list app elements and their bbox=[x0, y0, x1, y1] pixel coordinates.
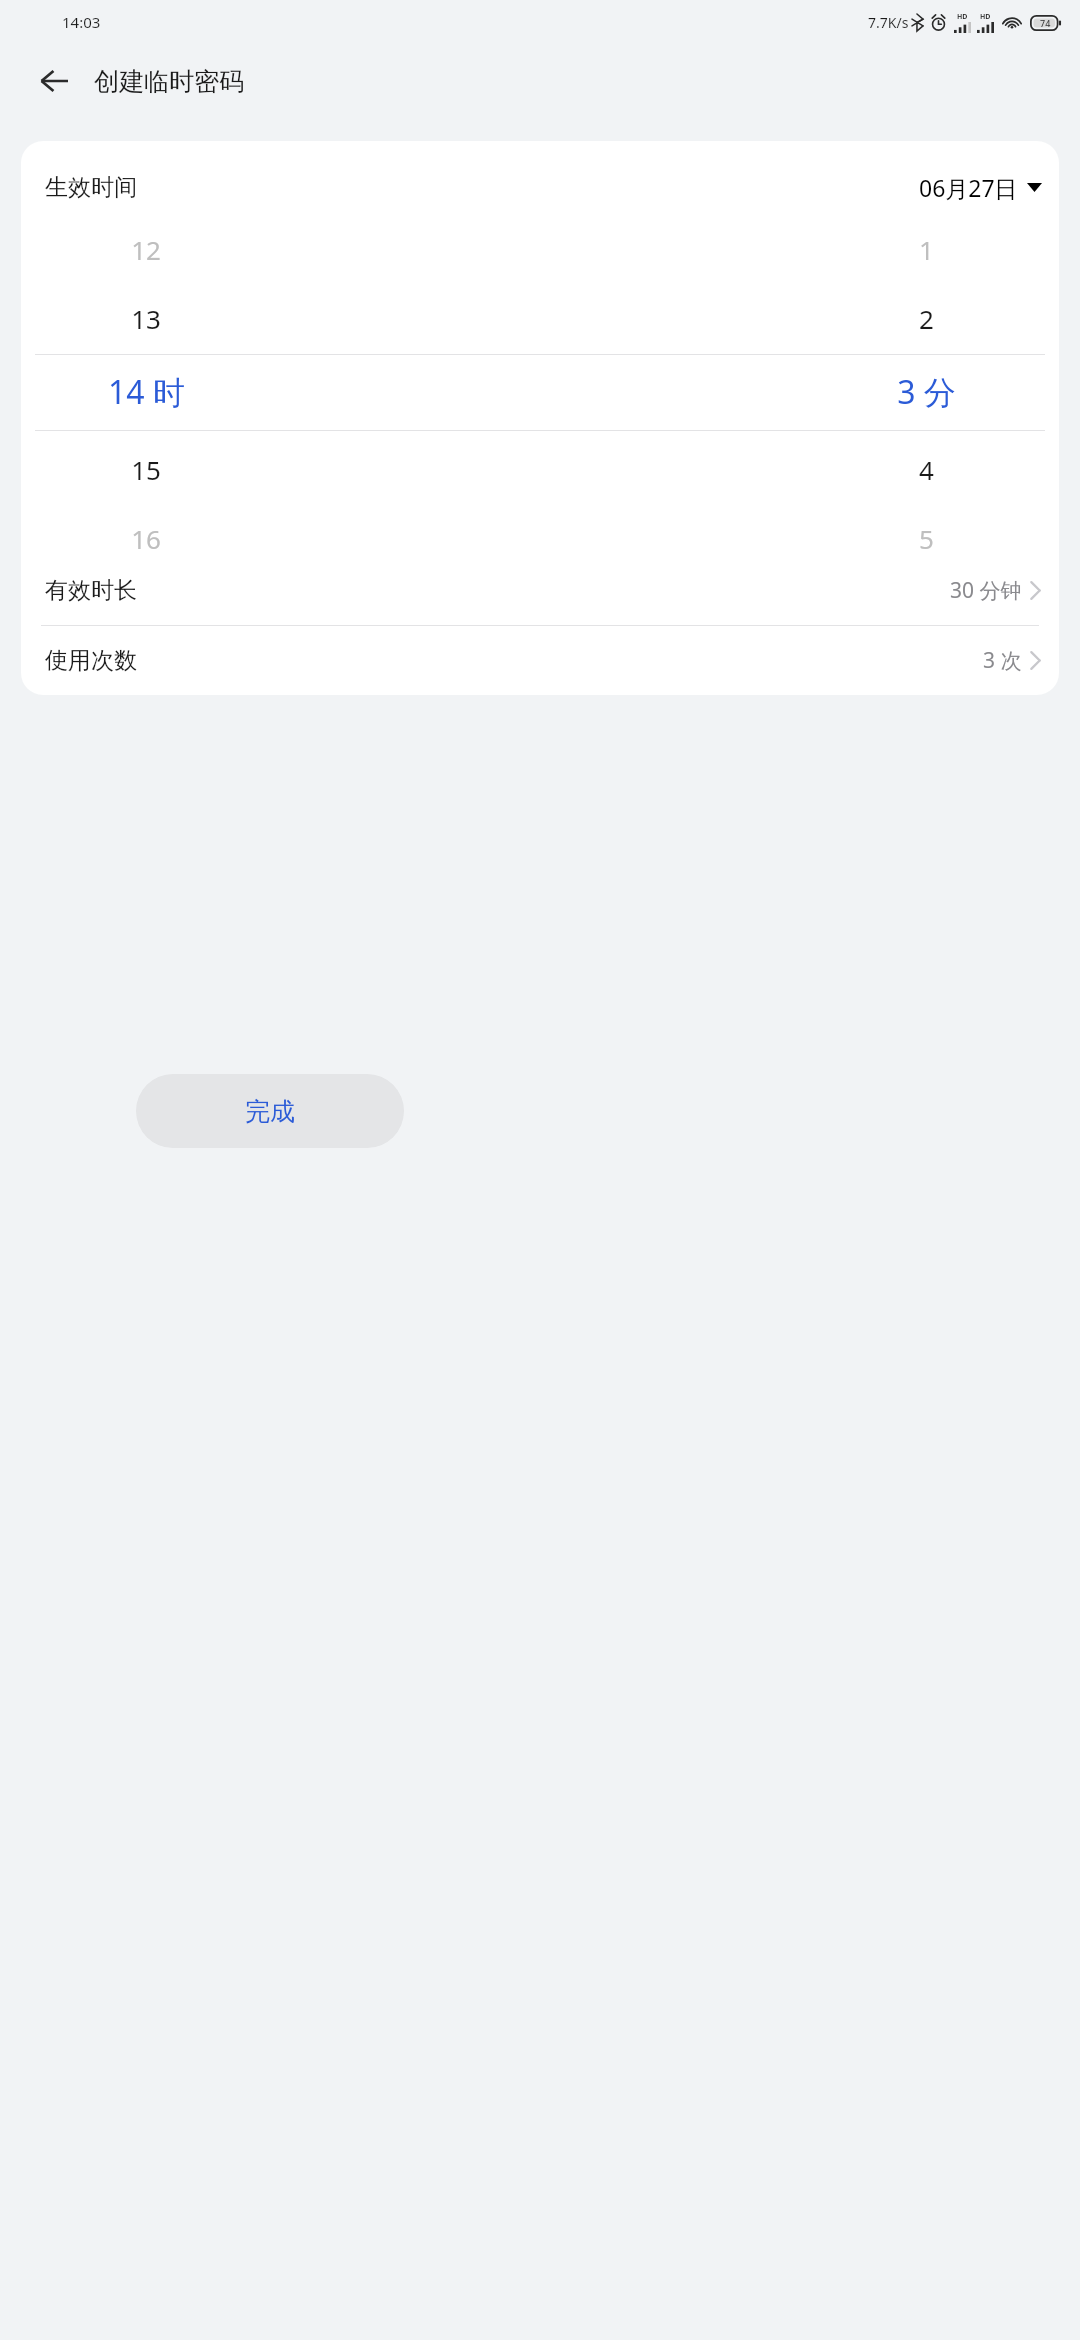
staticText: 16 bbox=[131, 521, 161, 556]
button[interactable]: 12 bbox=[21, 230, 271, 268]
button[interactable]: 3 分 bbox=[801, 368, 1051, 416]
staticText: 15 bbox=[131, 452, 161, 487]
button[interactable]: 2 bbox=[801, 299, 1051, 337]
button[interactable]: 16 bbox=[21, 519, 271, 557]
button[interactable]: 有效时长 bbox=[21, 555, 1059, 625]
staticText: 14:03 bbox=[62, 12, 101, 32]
button[interactable]: 4 bbox=[801, 450, 1051, 488]
staticText: HD bbox=[957, 12, 968, 22]
button[interactable]: 5 bbox=[801, 519, 1051, 557]
button[interactable]: 14 时 bbox=[21, 368, 271, 416]
staticText: 有效时长 bbox=[45, 576, 137, 605]
staticText: 13 bbox=[131, 301, 161, 336]
button[interactable]: 13 bbox=[21, 299, 271, 337]
button[interactable]: 15 bbox=[21, 450, 271, 488]
staticText: 1 bbox=[919, 232, 934, 267]
staticText: 创建临时密码 bbox=[94, 66, 244, 97]
staticText: 3 分 bbox=[897, 370, 956, 414]
button[interactable]: 使用次数 bbox=[21, 626, 1059, 695]
button[interactable]: 生效时间 bbox=[21, 141, 1059, 223]
staticText: 生效时间 bbox=[45, 173, 137, 202]
staticText: 14 时 bbox=[108, 370, 185, 414]
staticText: 12 bbox=[131, 232, 161, 267]
staticText: 30 分钟 bbox=[950, 576, 1022, 605]
button[interactable]: 返回 bbox=[26, 53, 82, 109]
staticText: 完成 bbox=[245, 1096, 295, 1127]
staticText: 06月27日 bbox=[919, 172, 1018, 203]
staticText: 7.7K/s bbox=[868, 13, 909, 32]
staticText: HD bbox=[980, 12, 991, 22]
staticText: 2 bbox=[919, 301, 934, 336]
staticText: 3 次 bbox=[983, 646, 1022, 675]
button[interactable]: 完成 bbox=[136, 1074, 404, 1148]
staticText: 4 bbox=[919, 452, 934, 487]
staticText: 使用次数 bbox=[45, 646, 137, 675]
staticText: 5 bbox=[919, 521, 934, 556]
staticText: 74 bbox=[1040, 17, 1051, 29]
button[interactable]: 1 bbox=[801, 230, 1051, 268]
